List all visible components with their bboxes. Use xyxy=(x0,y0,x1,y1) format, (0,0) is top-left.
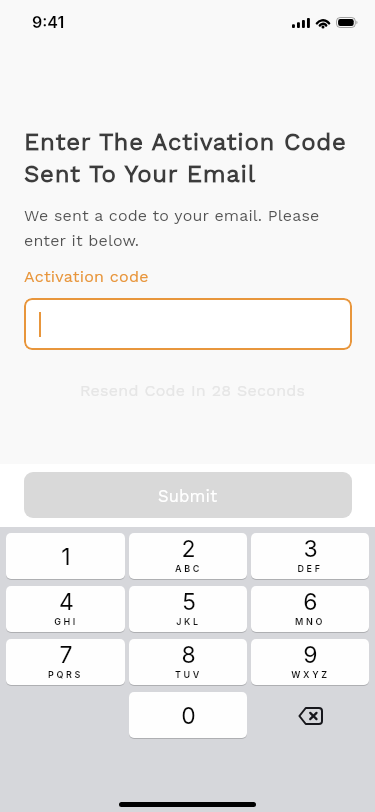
staticText: 6 xyxy=(303,588,318,616)
button[interactable]: 8 xyxy=(129,639,247,686)
staticText: PQRS xyxy=(48,669,83,680)
staticText: GHI xyxy=(54,616,78,627)
staticText: TUV xyxy=(175,669,202,680)
button[interactable]: 5 xyxy=(129,586,247,633)
staticText: ABC xyxy=(175,563,202,574)
staticText: 3 xyxy=(303,535,318,563)
staticText: 2 xyxy=(181,535,196,563)
staticText: Submit xyxy=(158,487,218,506)
staticText: 9 xyxy=(303,641,318,669)
button[interactable]: 9 xyxy=(251,639,369,686)
staticText: DEF xyxy=(297,563,323,574)
staticText: 0 xyxy=(181,702,196,730)
staticText: Resend Code In 28 Seconds xyxy=(80,381,306,400)
staticText: 7 xyxy=(59,641,73,669)
button[interactable]: Submit xyxy=(24,472,352,518)
button[interactable]: 7 xyxy=(6,639,125,686)
button[interactable]: 3 xyxy=(251,533,369,580)
staticText: 9:41 xyxy=(32,12,65,31)
staticText: MNO xyxy=(295,616,325,627)
staticText: 8 xyxy=(181,641,196,669)
button[interactable]: Delete xyxy=(251,692,369,739)
staticText: JKL xyxy=(176,616,201,627)
button[interactable]: 1 xyxy=(6,533,125,580)
staticText: Enter The Activation Code Sent To Your E… xyxy=(24,128,352,187)
button[interactable] xyxy=(24,298,352,350)
staticText: 1 xyxy=(61,543,71,571)
staticText: WXYZ xyxy=(291,669,330,680)
button[interactable]: 4 xyxy=(6,586,125,633)
button[interactable]: 0 xyxy=(129,692,247,739)
staticText: 5 xyxy=(182,588,196,616)
button[interactable]: 6 xyxy=(251,586,369,633)
staticText: We sent a code to your email. Please ent… xyxy=(24,206,352,250)
staticText: Activation code xyxy=(24,267,149,286)
button[interactable]: 2 xyxy=(129,533,247,580)
button[interactable]: Resend Code In 28 Seconds xyxy=(0,381,375,400)
staticText: 4 xyxy=(59,588,74,616)
